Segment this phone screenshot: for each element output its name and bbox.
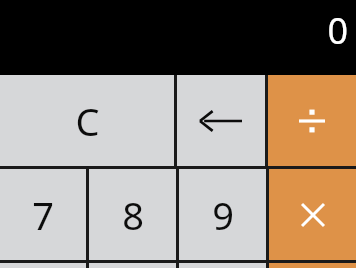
- button[interactable]: Backspace: [177, 75, 265, 166]
- button[interactable]: 9: [179, 169, 266, 260]
- button[interactable]: 8: [89, 169, 176, 260]
- staticText: 8: [122, 189, 144, 241]
- staticText: 0: [327, 6, 348, 55]
- button[interactable]: C: [0, 75, 174, 166]
- button[interactable]: 7: [0, 169, 86, 260]
- staticText: 9: [212, 189, 234, 241]
- button[interactable]: Multiply: [269, 169, 356, 260]
- staticText: C: [75, 95, 100, 147]
- button[interactable]: Divide: [268, 75, 356, 166]
- staticText: 7: [32, 189, 54, 241]
